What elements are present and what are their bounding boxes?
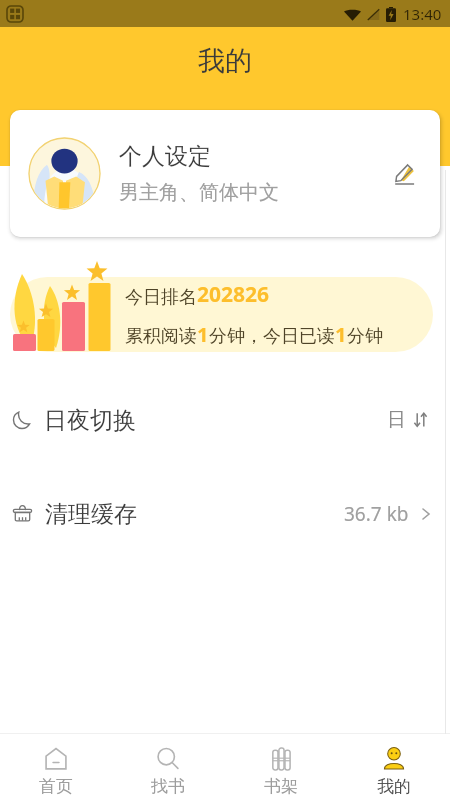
button[interactable]: 找书 [112,734,224,800]
staticText: 累积阅读 [125,325,197,348]
button[interactable]: 个人设定 [10,110,440,237]
staticText: 1 [335,321,347,348]
staticText: 今日排名 [125,286,197,309]
staticText: 36.7 kb [344,501,409,527]
staticText: 男主角、简体中文 [119,180,279,205]
staticText: 分钟 [347,325,383,348]
staticText: 分钟，今日已读 [209,325,335,348]
staticText: 找书 [151,776,185,796]
staticText: 日夜切换 [44,406,136,435]
button[interactable]: 清理缓存 [0,467,450,561]
staticText: 书架 [264,776,298,796]
button[interactable]: 书架 [224,734,337,800]
staticText: 个人设定 [119,142,211,171]
button[interactable]: Toggle day night mode [383,404,434,436]
button[interactable]: Edit profile [382,151,428,197]
button[interactable]: 日夜切换 [0,373,450,467]
staticText: 首页 [39,776,73,796]
staticText: 我的 [198,44,252,78]
staticText: 1 [197,321,209,348]
staticText: 13:40 [403,4,442,24]
staticText: 清理缓存 [45,500,137,529]
staticText: 日 [387,408,406,432]
button[interactable]: 我的 [337,734,450,800]
button[interactable]: 首页 [0,734,112,800]
staticText: 202826 [197,280,270,309]
staticText: 我的 [377,776,411,796]
